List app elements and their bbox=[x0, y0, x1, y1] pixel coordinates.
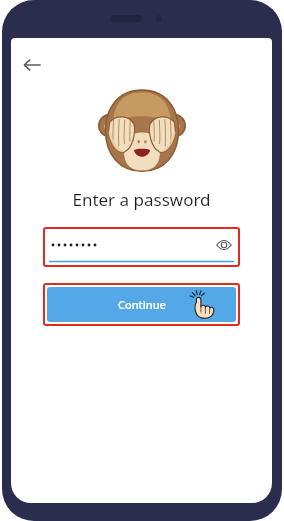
button[interactable]: Continue bbox=[47, 287, 236, 322]
staticText: Enter a password bbox=[72, 188, 211, 211]
button[interactable]: Show password bbox=[213, 234, 235, 256]
button[interactable]: Back bbox=[17, 50, 47, 80]
button[interactable]: Show password bbox=[43, 227, 240, 267]
staticText: Continue bbox=[118, 297, 166, 312]
